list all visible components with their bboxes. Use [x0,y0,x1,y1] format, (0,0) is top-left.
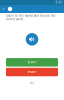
staticText: answer [27,61,36,64]
button[interactable]: Home [7,5,13,13]
staticText: Listen to the words and choose the corre… [6,14,56,21]
staticText: answer [27,70,36,74]
button[interactable]: Play audio [26,33,38,46]
button[interactable]: answer [6,68,58,76]
button[interactable]: answer [6,58,58,67]
button[interactable]: Menu [0,5,7,13]
staticText: skip [29,81,34,85]
staticText: 8:46 [55,1,62,4]
button[interactable]: skip [29,81,34,85]
